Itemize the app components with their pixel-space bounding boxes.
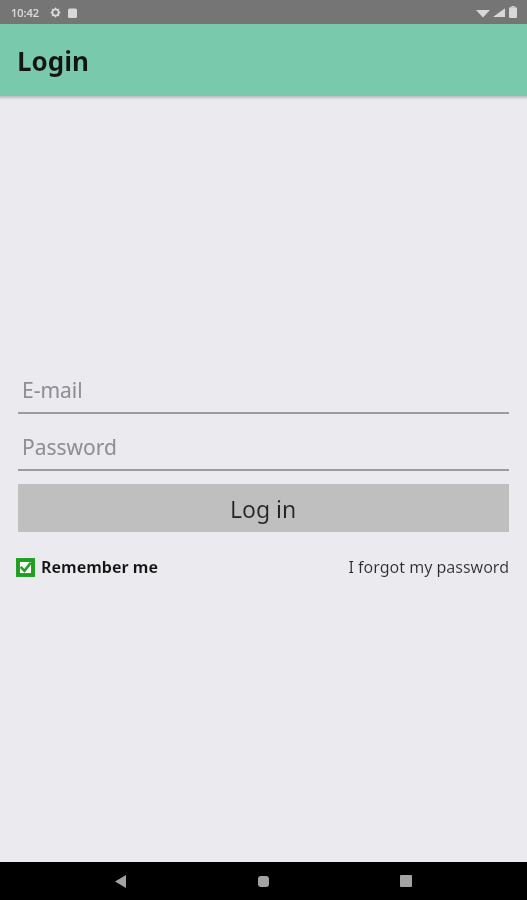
staticText: Remember me	[41, 556, 158, 578]
staticText: 10:42	[11, 5, 40, 20]
staticText: Log in	[230, 493, 297, 524]
button[interactable]: Remember me	[18, 556, 158, 578]
button[interactable]: Home	[241, 862, 285, 900]
button[interactable]: Back	[98, 862, 142, 900]
button[interactable]: Password	[18, 425, 509, 471]
staticText: Password	[22, 433, 117, 462]
button[interactable]: Recent apps	[384, 862, 428, 900]
button[interactable]: Log in	[18, 484, 509, 532]
button[interactable]: E-mail	[18, 368, 509, 414]
staticText: Login	[17, 43, 89, 78]
staticText: I forgot my password	[348, 556, 509, 578]
button[interactable]: I forgot my password	[348, 556, 509, 578]
staticText: E-mail	[22, 376, 83, 405]
